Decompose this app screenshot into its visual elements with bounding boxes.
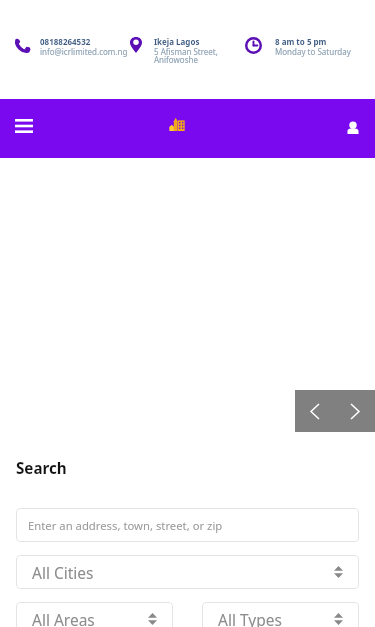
staticText: Enter an address, town, street, or zip xyxy=(28,518,223,533)
button[interactable]: Next slide xyxy=(335,390,375,432)
staticText: All Cities xyxy=(32,562,94,583)
staticText: info@icrlimited.com.ng xyxy=(40,46,128,57)
button[interactable]: Menu xyxy=(7,109,41,143)
button[interactable]: 08188264532 xyxy=(15,34,130,72)
staticText: All Types xyxy=(218,609,282,627)
staticText: 5 Afisman Street, xyxy=(154,46,218,57)
staticText: 08188264532 xyxy=(40,36,91,47)
staticText: Anifowoshe xyxy=(154,54,198,65)
staticText: 8 am to 5 pm xyxy=(275,36,327,47)
button[interactable]: 8 am to 5 pm xyxy=(245,34,365,72)
button[interactable]: Ikeja Lagos xyxy=(130,34,244,72)
button[interactable]: All Types xyxy=(202,602,359,627)
button[interactable]: Enter an address, town, street, or zip xyxy=(16,508,359,542)
staticText: All Areas xyxy=(32,609,95,627)
button[interactable]: Home logo xyxy=(160,111,194,137)
button[interactable]: Previous slide xyxy=(295,390,335,432)
button[interactable]: Account xyxy=(339,114,367,142)
button[interactable]: All Areas xyxy=(16,602,173,627)
staticText: Search xyxy=(16,458,67,479)
staticText: Ikeja Lagos xyxy=(154,36,200,47)
staticText: Monday to Saturday xyxy=(275,46,351,57)
button[interactable]: All Cities xyxy=(16,555,359,589)
